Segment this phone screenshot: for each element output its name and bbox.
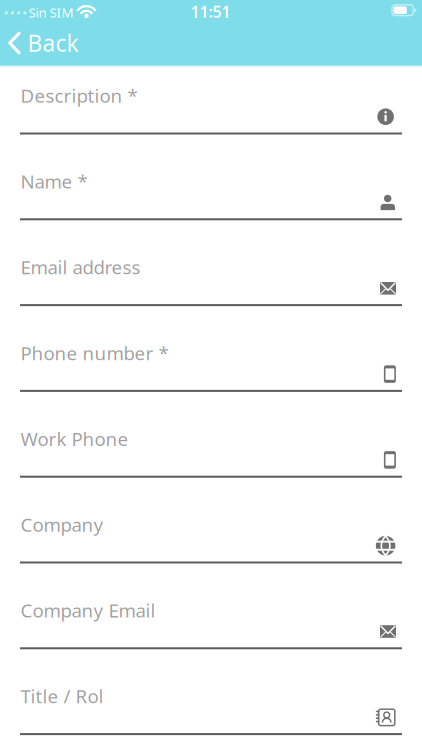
staticText: Phone number * [20, 340, 168, 365]
staticText: Name * [20, 169, 87, 194]
button[interactable]: Info [373, 104, 399, 130]
button[interactable]: Back [0, 21, 90, 65]
staticText: Title / Rol [20, 684, 103, 708]
staticText: 11:51 [190, 1, 230, 22]
staticText: Company [20, 512, 103, 537]
button[interactable]: Description * [0, 65, 422, 134]
staticText: Company Email [20, 598, 155, 623]
staticText: Description * [20, 83, 137, 108]
button[interactable]: Name * [0, 134, 422, 220]
button[interactable]: Title / Rol [0, 649, 422, 735]
staticText: Email address [20, 255, 140, 279]
button[interactable]: Company Email [0, 563, 422, 649]
staticText: Sin SIM [28, 3, 73, 21]
button[interactable]: Work Phone [0, 392, 422, 478]
button[interactable]: Company [0, 478, 422, 563]
button[interactable]: Email address [0, 220, 422, 306]
button[interactable]: Phone number * [0, 306, 422, 392]
staticText: Work Phone [20, 426, 128, 451]
staticText: Back [27, 28, 78, 58]
